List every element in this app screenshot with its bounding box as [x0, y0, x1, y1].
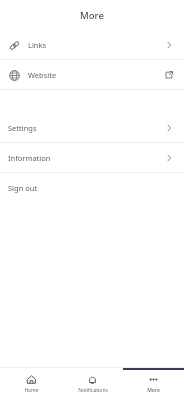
staticText: Home: [24, 387, 39, 394]
staticText: Settings: [8, 123, 37, 133]
staticText: Information: [8, 153, 51, 163]
other: Open website: [164, 70, 174, 80]
staticText: More: [147, 387, 160, 394]
button[interactable]: Links: [0, 30, 184, 59]
button[interactable]: Home: [0, 368, 62, 400]
button[interactable]: Sign out: [0, 173, 184, 202]
staticText: Sign out: [8, 183, 38, 193]
staticText: More: [80, 9, 104, 22]
other: Open: [164, 123, 174, 133]
button[interactable]: Notifications: [62, 368, 123, 400]
other: More: [148, 374, 159, 385]
staticText: Website: [28, 70, 57, 80]
other: Open: [164, 40, 174, 50]
button[interactable]: Information: [0, 143, 184, 172]
button[interactable]: Settings: [0, 113, 184, 142]
button[interactable]: Website: [0, 60, 184, 89]
staticText: Links: [28, 40, 47, 50]
staticText: Notifications: [78, 387, 108, 394]
other: Open: [164, 153, 174, 163]
button[interactable]: More: [123, 368, 184, 400]
